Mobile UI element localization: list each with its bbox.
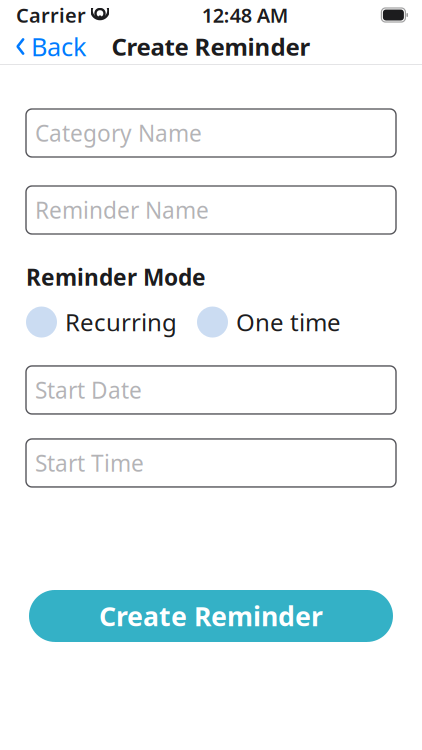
button[interactable]: Start Time	[26, 439, 396, 487]
staticText: Start Date	[35, 375, 142, 405]
staticText: Category Name	[35, 118, 202, 148]
button[interactable]: One time	[197, 302, 345, 342]
staticText: 12:48 AM	[202, 2, 289, 28]
staticText: Start Time	[35, 448, 144, 478]
button[interactable]: Start Date	[26, 366, 396, 414]
staticText: Reminder Name	[35, 195, 209, 225]
staticText: Back	[31, 30, 87, 63]
button[interactable]: Create Reminder	[29, 590, 393, 642]
staticText: Carrier	[16, 2, 86, 28]
staticText: Create Reminder	[99, 598, 323, 634]
button[interactable]: Back	[0, 22, 95, 71]
button[interactable]: Recurring	[26, 302, 181, 342]
staticText: Create Reminder	[111, 31, 310, 62]
staticText: Recurring	[65, 306, 177, 338]
staticText: Reminder Mode	[26, 262, 206, 292]
button[interactable]: Category Name	[26, 109, 396, 157]
button[interactable]: Reminder Name	[26, 186, 396, 234]
staticText: One time	[236, 306, 341, 338]
